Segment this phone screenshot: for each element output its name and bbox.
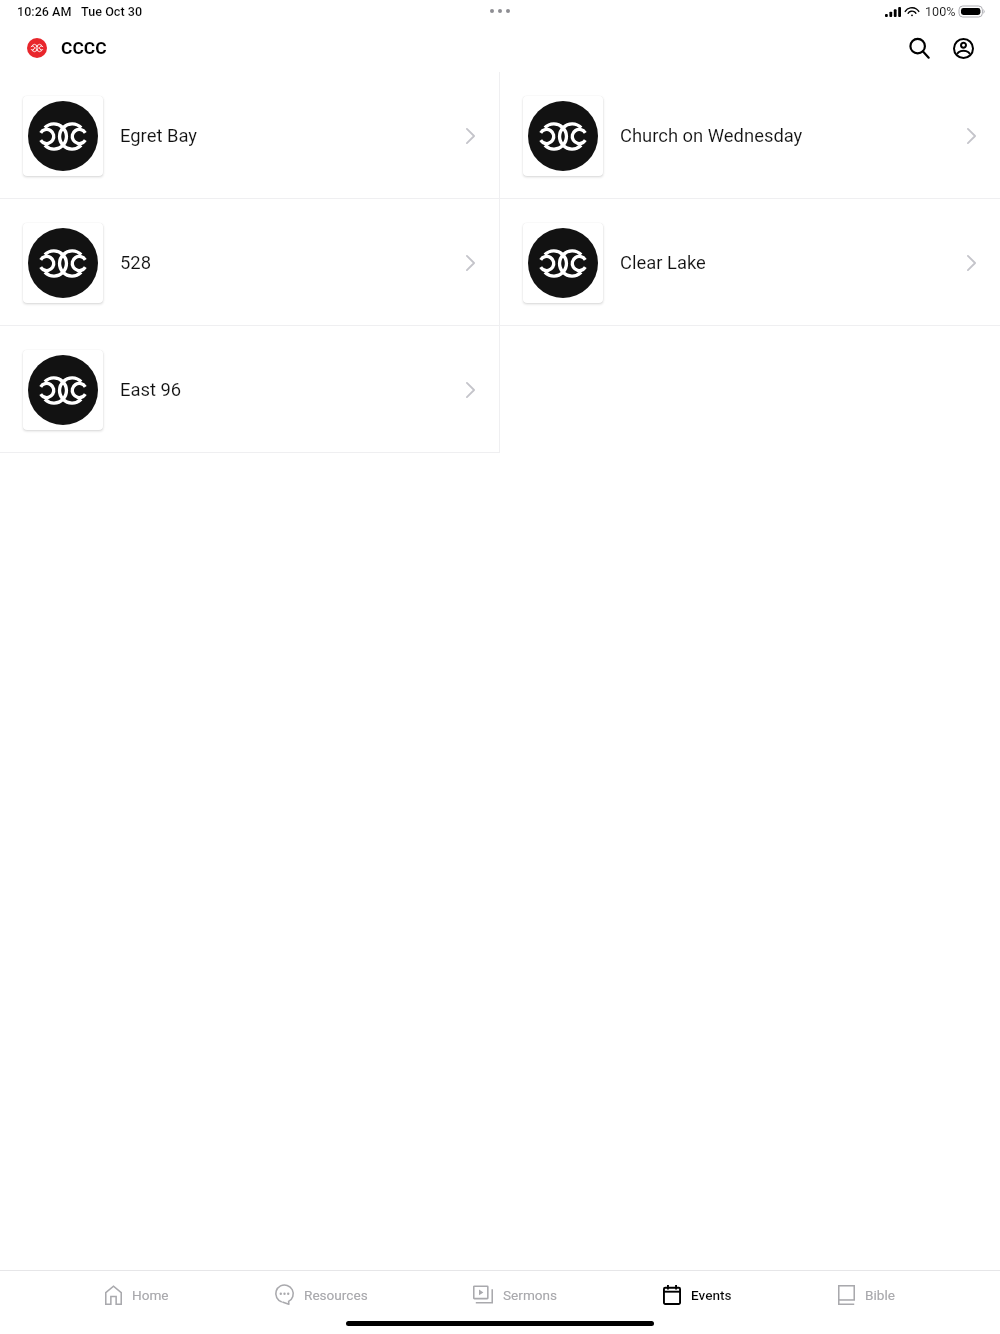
staticText: Church on Wednesday <box>620 125 967 147</box>
button[interactable]: Resources <box>275 1273 368 1316</box>
button[interactable]: Egret Bay <box>0 72 499 199</box>
button[interactable]: Home <box>105 1273 169 1316</box>
staticText: Tue Oct 30 <box>81 4 143 19</box>
staticText: Egret Bay <box>120 125 466 147</box>
staticText: Resources <box>304 1287 368 1303</box>
staticText: 10:26 AM <box>17 4 72 19</box>
staticText: Home <box>132 1287 169 1303</box>
staticText: 100% <box>925 4 956 19</box>
button[interactable]: 528 <box>0 199 499 326</box>
staticText: Sermons <box>503 1287 558 1303</box>
staticText: Bible <box>865 1287 895 1303</box>
staticText: Events <box>691 1287 732 1303</box>
button[interactable]: Events <box>663 1273 732 1316</box>
staticText: CCCC <box>61 38 107 58</box>
button[interactable]: Church on Wednesday <box>500 72 1000 199</box>
staticText: East 96 <box>120 379 466 401</box>
button[interactable]: Sermons <box>473 1273 558 1316</box>
staticText: 528 <box>120 252 466 274</box>
button[interactable]: Bible <box>838 1273 895 1316</box>
button[interactable]: Account <box>941 26 985 70</box>
staticText: Clear Lake <box>620 252 967 274</box>
button[interactable]: Search <box>897 26 941 70</box>
button[interactable]: East 96 <box>0 326 499 453</box>
button[interactable]: Clear Lake <box>500 199 1000 326</box>
